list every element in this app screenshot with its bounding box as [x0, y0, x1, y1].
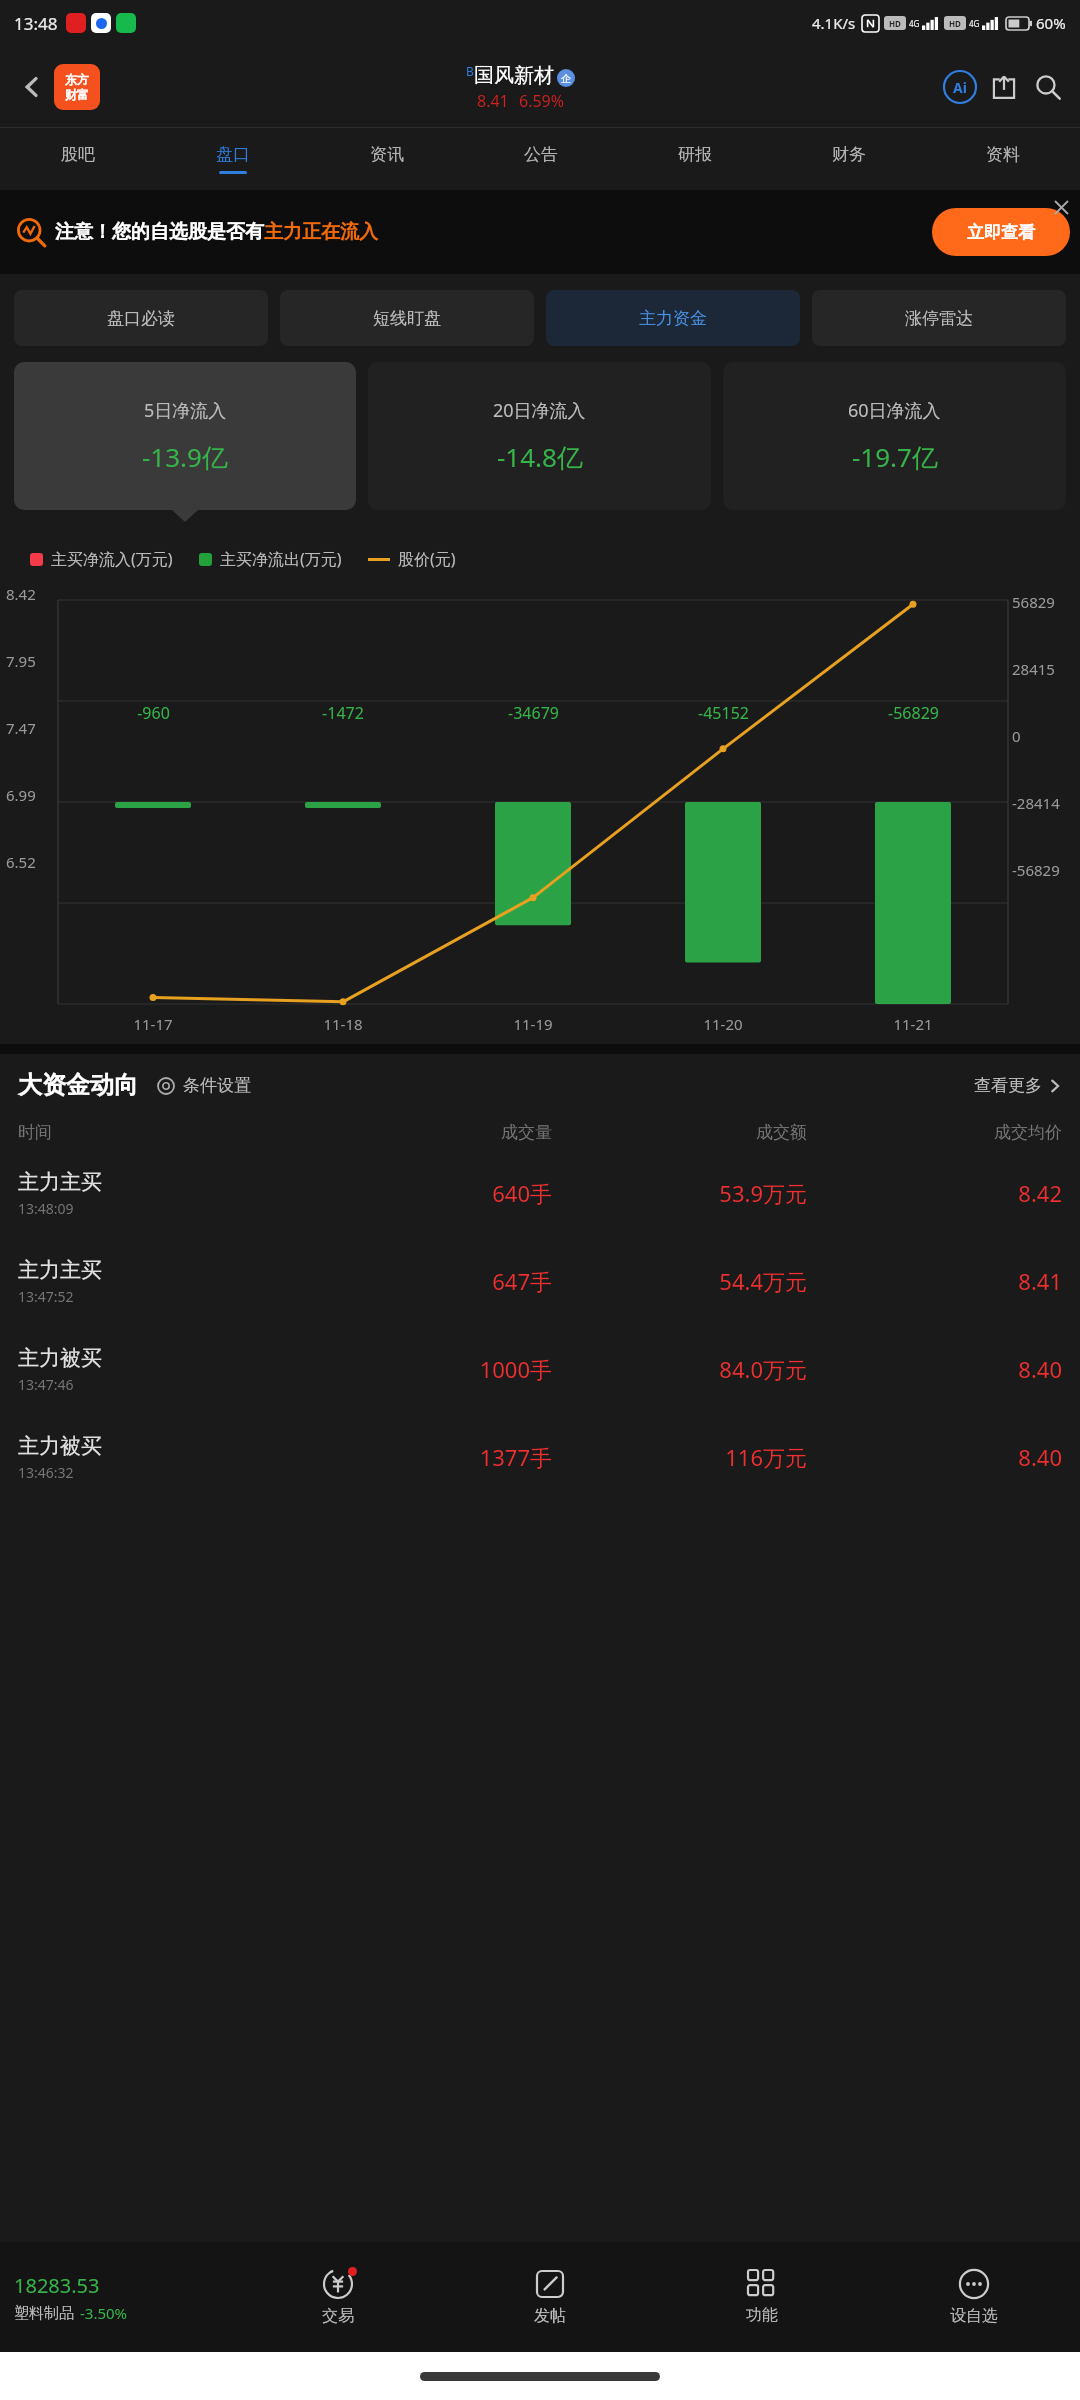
staticText: 短线盯盘 — [373, 308, 441, 329]
staticText: -34679 — [508, 702, 559, 724]
button[interactable]: 功能 — [656, 2242, 868, 2352]
button[interactable]: 涨停雷达 — [812, 290, 1066, 346]
button[interactable]: 查看更多 — [974, 1075, 1062, 1096]
staticText: 资料 — [986, 144, 1020, 165]
button[interactable]: 主力被买 — [0, 1413, 1080, 1501]
staticText: 11-20 — [703, 1014, 743, 1034]
button[interactable]: 主力资金 — [546, 290, 800, 346]
button[interactable]: Close — [1048, 194, 1074, 220]
button[interactable]: 立即查看 — [932, 208, 1070, 256]
staticText: 股吧 — [61, 144, 95, 165]
staticText: 11-17 — [133, 1014, 173, 1034]
staticText: 成交均价 — [807, 1122, 1062, 1143]
staticText: 8.41 — [807, 1266, 1062, 1296]
staticText: 成交量 — [297, 1122, 552, 1143]
staticText: 设自选 — [950, 2306, 998, 2326]
staticText: 13:47:52 — [18, 1287, 74, 1306]
staticText: HD — [889, 18, 901, 29]
staticText: 企 — [561, 72, 571, 85]
button[interactable]: Search — [1030, 69, 1066, 105]
staticText: 11-19 — [513, 1014, 553, 1034]
button[interactable]: 设自选 — [868, 2242, 1080, 2352]
button[interactable]: 交易 — [232, 2242, 444, 2352]
staticText: 条件设置 — [183, 1075, 251, 1096]
staticText: 13:48:09 — [18, 1199, 74, 1218]
button[interactable]: Share — [986, 69, 1022, 105]
button[interactable]: 短线盯盘 — [280, 290, 534, 346]
staticText: 研报 — [678, 144, 712, 165]
staticText: 18283.53 — [14, 2272, 100, 2299]
staticText: 发帖 — [534, 2306, 566, 2326]
staticText: -14.8亿 — [497, 439, 583, 475]
staticText: 主买净流出(万元) — [220, 548, 342, 570]
staticText: 647手 — [297, 1266, 552, 1296]
staticText: 盘口 — [216, 144, 250, 165]
staticText: 股价(元) — [398, 548, 456, 570]
button[interactable]: 5日净流入 — [14, 362, 356, 510]
button[interactable]: 资讯 — [310, 128, 464, 190]
staticText: 主买净流入(万元) — [51, 548, 173, 570]
staticText: 成交额 — [552, 1122, 807, 1143]
staticText: 54.4万元 — [552, 1266, 807, 1296]
staticText: -28414 — [1012, 793, 1060, 813]
staticText: 时间 — [18, 1122, 297, 1143]
staticText: 8.41 — [477, 90, 509, 112]
staticText: 4G — [969, 18, 980, 29]
staticText: 立即查看 — [967, 222, 1035, 243]
staticText: 7.47 — [6, 718, 36, 738]
button[interactable]: 主力主买 — [0, 1149, 1080, 1237]
button[interactable]: 研报 — [618, 128, 772, 190]
button[interactable]: 财务 — [772, 128, 926, 190]
staticText: 主力被买 — [18, 1345, 102, 1371]
staticText: 查看更多 — [974, 1075, 1042, 1096]
staticText: 13:47:46 — [18, 1375, 74, 1394]
staticText: 4G — [909, 18, 920, 29]
staticText: 国风新材 — [474, 63, 554, 88]
button[interactable]: 公告 — [464, 128, 618, 190]
button[interactable]: Back — [10, 65, 54, 109]
staticText: 东方 — [65, 72, 89, 87]
button[interactable]: 主力主买 — [0, 1237, 1080, 1325]
staticText: 11-18 — [323, 1014, 363, 1034]
staticText: 60日净流入 — [848, 398, 941, 423]
button[interactable]: 20日净流入 — [368, 362, 711, 510]
staticText: 财务 — [832, 144, 866, 165]
staticText: 116万元 — [552, 1442, 807, 1472]
staticText: -960 — [137, 702, 170, 724]
staticText: 盘口必读 — [107, 308, 175, 329]
staticText: 主力正在流入 — [264, 220, 378, 244]
button[interactable]: 条件设置 — [156, 1075, 251, 1096]
staticText: -45152 — [698, 702, 749, 724]
button[interactable]: 股吧 — [0, 128, 155, 190]
staticText: 6.59% — [519, 90, 565, 112]
button[interactable]: 资料 — [926, 128, 1080, 190]
staticText: 资讯 — [370, 144, 404, 165]
button[interactable]: 盘口 — [155, 128, 310, 190]
button[interactable]: 主力被买 — [0, 1325, 1080, 1413]
staticText: 8.40 — [807, 1354, 1062, 1384]
staticText: 4.1K/s — [812, 13, 856, 33]
staticText: 13:48 — [14, 12, 58, 35]
staticText: 功能 — [746, 2305, 778, 2325]
button[interactable]: 盘口必读 — [14, 290, 268, 346]
button[interactable]: East Money — [54, 64, 100, 110]
staticText: 1377手 — [297, 1442, 552, 1472]
staticText: 28415 — [1012, 659, 1055, 679]
staticText: 塑料制品 — [14, 2304, 74, 2323]
button[interactable]: 60日净流入 — [723, 362, 1066, 510]
staticText: 6.52 — [6, 852, 36, 872]
staticText: 13:46:32 — [18, 1463, 74, 1482]
staticText: 1000手 — [297, 1354, 552, 1384]
staticText: B — [466, 63, 474, 79]
staticText: 8.42 — [807, 1178, 1062, 1208]
staticText: 涨停雷达 — [905, 308, 973, 329]
staticText: 注意！您的自选股是否有 — [55, 220, 264, 244]
staticText: 7.95 — [6, 651, 36, 671]
button[interactable]: 发帖 — [444, 2242, 656, 2352]
staticText: 8.40 — [807, 1442, 1062, 1472]
staticText: Ai — [953, 78, 967, 97]
staticText: 53.9万元 — [552, 1178, 807, 1208]
button[interactable]: AI — [942, 69, 978, 105]
staticText: 大资金动向 — [18, 1070, 138, 1100]
staticText: 8.42 — [6, 584, 36, 604]
